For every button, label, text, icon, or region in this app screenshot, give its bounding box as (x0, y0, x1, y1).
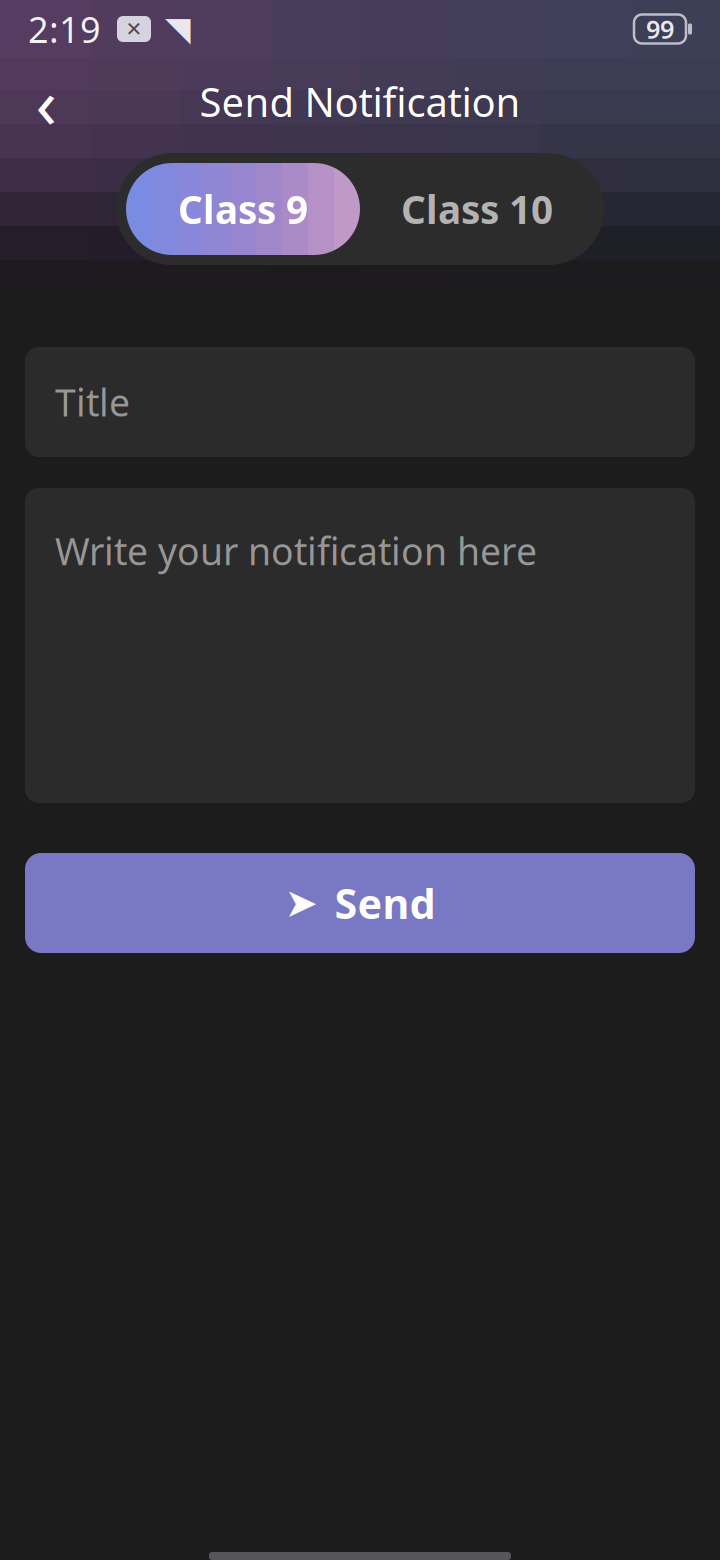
staticText: 99 (646, 12, 674, 46)
staticText: ➤ (284, 880, 318, 926)
staticText: ‹ (35, 55, 56, 148)
staticText: ◥ (165, 10, 191, 48)
button[interactable]: Back (8, 63, 84, 139)
button[interactable]: Write your notification here (25, 488, 695, 803)
staticText: 2:19 (28, 5, 101, 53)
staticText: Class 9 (178, 183, 308, 235)
staticText: Write your notification here (55, 526, 537, 576)
staticText: Send Notification (199, 75, 520, 128)
staticText: Class 10 (401, 183, 553, 235)
staticText: ✕ (125, 18, 142, 40)
staticText: Title (55, 377, 130, 427)
button[interactable]: Class 10 (360, 163, 594, 255)
staticText: Send (334, 876, 435, 930)
button[interactable]: ➤ (25, 853, 695, 953)
button[interactable]: Title (25, 347, 695, 457)
button[interactable]: Class 9 (126, 163, 360, 255)
